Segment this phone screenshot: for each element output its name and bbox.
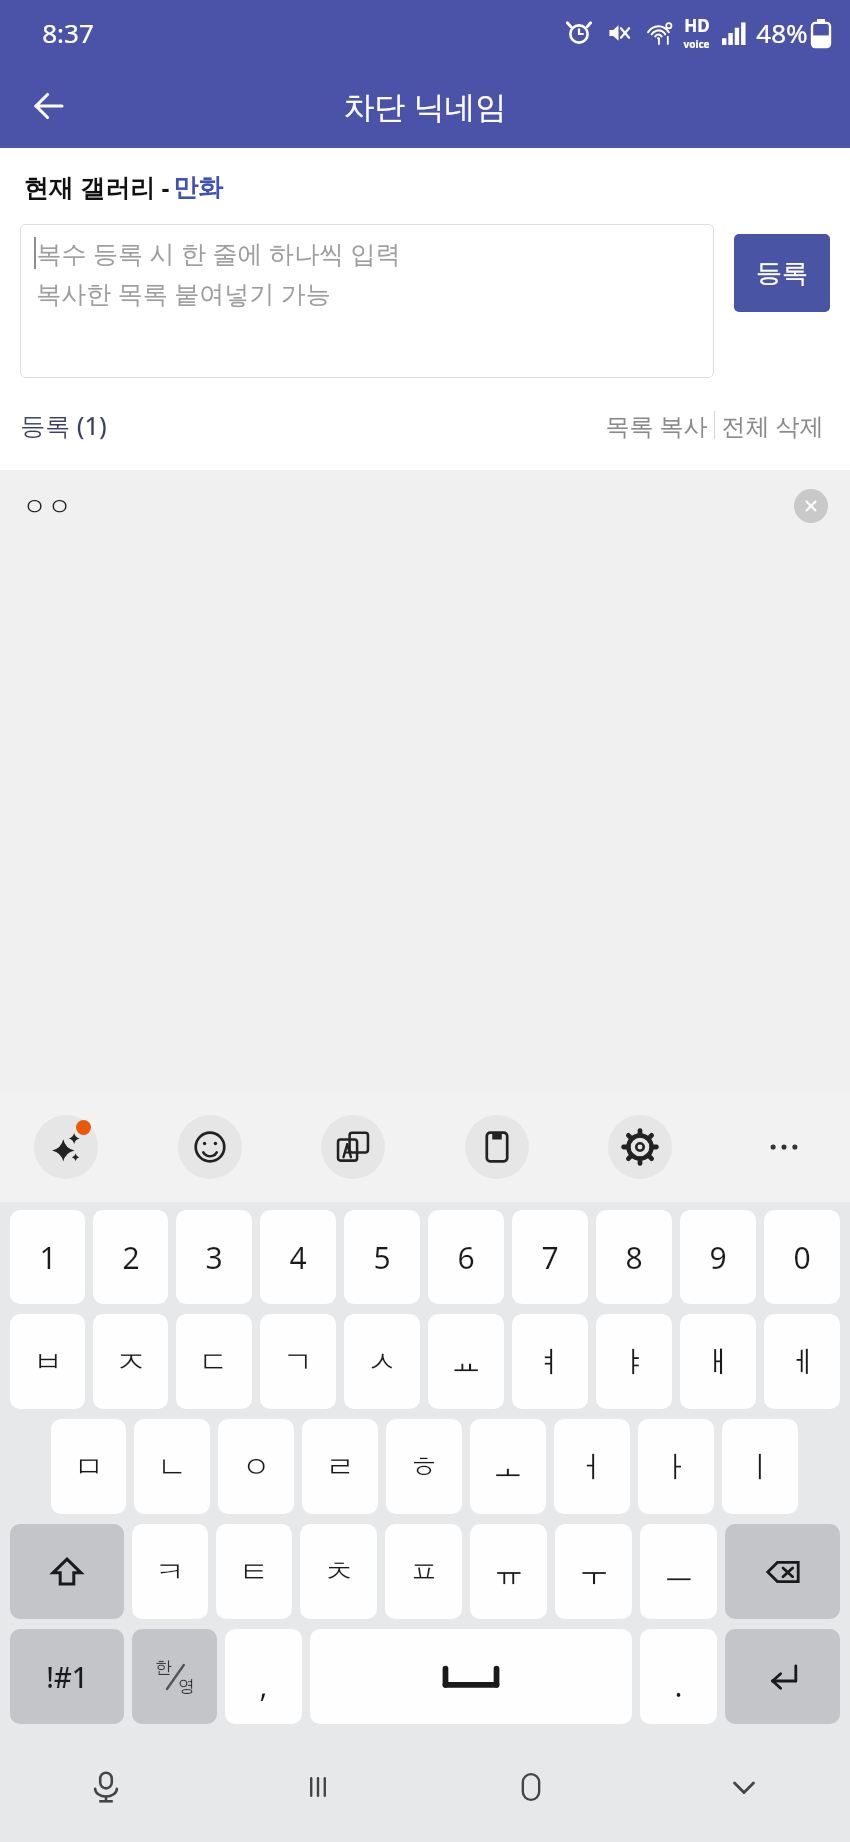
- button[interactable]: 복수 등록 시 한 줄에 하나씩 입력: [20, 224, 714, 378]
- button[interactable]: ㅑ: [596, 1314, 672, 1409]
- button[interactable]: ㅋ: [132, 1524, 208, 1619]
- button[interactable]: ㅜ: [555, 1524, 632, 1619]
- button[interactable]: ㅈ: [93, 1314, 168, 1409]
- staticText: ㅇㅇ: [22, 491, 72, 522]
- staticText: ㅊ: [324, 1553, 354, 1591]
- staticText: 4: [289, 1237, 307, 1278]
- button[interactable]: ㅁ: [51, 1419, 126, 1514]
- staticText: 등록: [756, 257, 808, 290]
- staticText: 48%: [756, 15, 808, 50]
- staticText: ㄹ: [325, 1448, 355, 1486]
- button[interactable]: 6: [428, 1210, 504, 1304]
- staticText: ㅓ: [577, 1448, 607, 1486]
- button[interactable]: ㅔ: [764, 1314, 840, 1409]
- button[interactable]: ㅍ: [385, 1524, 462, 1619]
- button[interactable]: ㅂ: [10, 1314, 85, 1409]
- staticText: 복수 등록 시 한 줄에 하나씩 입력: [36, 236, 401, 270]
- staticText: !#1: [46, 1658, 88, 1696]
- button[interactable]: 4: [260, 1210, 336, 1304]
- button[interactable]: Voice input: [0, 1732, 212, 1842]
- staticText: 8: [625, 1237, 643, 1278]
- button[interactable]: .: [640, 1629, 717, 1724]
- button[interactable]: ㅗ: [470, 1419, 546, 1514]
- button[interactable]: 등록: [734, 234, 830, 312]
- staticText: HD: [684, 14, 710, 37]
- button[interactable]: Back: [14, 71, 84, 141]
- staticText: ㄷ: [199, 1343, 229, 1381]
- button[interactable]: Shift: [10, 1524, 124, 1619]
- button[interactable]: More: [752, 1115, 816, 1179]
- button[interactable]: ㅊ: [300, 1524, 377, 1619]
- staticText: ㅇ: [241, 1448, 271, 1486]
- button[interactable]: Emoji: [178, 1115, 242, 1179]
- staticText: 7: [541, 1237, 559, 1278]
- button[interactable]: Hide keyboard: [637, 1732, 850, 1842]
- staticText: ㅂ: [33, 1343, 63, 1381]
- button[interactable]: 3: [176, 1210, 252, 1304]
- button[interactable]: Settings: [608, 1115, 672, 1179]
- button[interactable]: ㅛ: [428, 1314, 504, 1409]
- staticText: ㅍ: [409, 1553, 439, 1591]
- button[interactable]: ㅡ: [640, 1524, 717, 1619]
- staticText: ㅔ: [787, 1343, 817, 1381]
- staticText: 8:37: [42, 15, 94, 50]
- staticText: 5: [373, 1237, 391, 1278]
- staticText: ㅕ: [535, 1343, 565, 1381]
- button[interactable]: AI suggestions: [34, 1115, 98, 1179]
- button[interactable]: 8: [596, 1210, 672, 1304]
- button[interactable]: 5: [344, 1210, 420, 1304]
- button[interactable]: 2: [93, 1210, 168, 1304]
- staticText: 만화: [173, 172, 223, 203]
- staticText: 차단 닉네임: [343, 85, 507, 127]
- staticText: 0: [793, 1237, 811, 1278]
- staticText: ㅌ: [239, 1553, 269, 1591]
- button[interactable]: Home: [424, 1732, 637, 1842]
- staticText: ㄴ: [157, 1448, 187, 1486]
- button[interactable]: ㅌ: [216, 1524, 292, 1619]
- button[interactable]: ㅎ: [386, 1419, 462, 1514]
- button[interactable]: ㅐ: [680, 1314, 756, 1409]
- staticText: 전체 삭제: [721, 409, 824, 442]
- staticText: voice: [683, 37, 710, 51]
- button[interactable]: ㄷ: [176, 1314, 252, 1409]
- staticText: 복사한 목록 붙여넣기 가능: [36, 276, 331, 310]
- staticText: 3: [205, 1237, 223, 1278]
- staticText: 현재 갤러리 -: [20, 170, 173, 204]
- button[interactable]: !#1: [10, 1629, 124, 1724]
- button[interactable]: Recent apps: [212, 1732, 424, 1842]
- staticText: ㅛ: [451, 1343, 481, 1381]
- button[interactable]: ㄱ: [260, 1314, 336, 1409]
- button[interactable]: 등록 (1): [20, 404, 107, 446]
- button[interactable]: 목록 복사: [599, 405, 714, 446]
- button[interactable]: ㅕ: [512, 1314, 588, 1409]
- staticText: ㄱ: [283, 1343, 313, 1381]
- staticText: ㅑ: [619, 1343, 649, 1381]
- button[interactable]: ㄹ: [302, 1419, 378, 1514]
- staticText: ㅜ: [579, 1553, 609, 1591]
- button[interactable]: Remove: [794, 489, 828, 523]
- button[interactable]: Enter: [725, 1629, 840, 1724]
- button[interactable]: ㅣ: [722, 1419, 798, 1514]
- button[interactable]: 9: [680, 1210, 756, 1304]
- button[interactable]: ㅅ: [344, 1314, 420, 1409]
- staticText: ㅠ: [494, 1553, 524, 1591]
- staticText: .: [674, 1665, 683, 1706]
- button[interactable]: Language: [132, 1629, 217, 1724]
- button[interactable]: Clipboard: [465, 1115, 529, 1179]
- button[interactable]: ㄴ: [134, 1419, 210, 1514]
- button[interactable]: Backspace: [725, 1524, 840, 1619]
- button[interactable]: ㅇ: [218, 1419, 294, 1514]
- staticText: ㅗ: [493, 1448, 523, 1486]
- staticText: 한: [155, 1657, 172, 1678]
- button[interactable]: Translate: [321, 1115, 385, 1179]
- button[interactable]: ㅓ: [554, 1419, 630, 1514]
- button[interactable]: [310, 1629, 632, 1724]
- staticText: ㅣ: [745, 1448, 775, 1486]
- button[interactable]: 전체 삭제: [715, 405, 830, 446]
- button[interactable]: ㅏ: [638, 1419, 714, 1514]
- button[interactable]: ,: [225, 1629, 302, 1724]
- button[interactable]: 7: [512, 1210, 588, 1304]
- button[interactable]: 1: [10, 1210, 85, 1304]
- button[interactable]: ㅠ: [470, 1524, 547, 1619]
- button[interactable]: 0: [764, 1210, 840, 1304]
